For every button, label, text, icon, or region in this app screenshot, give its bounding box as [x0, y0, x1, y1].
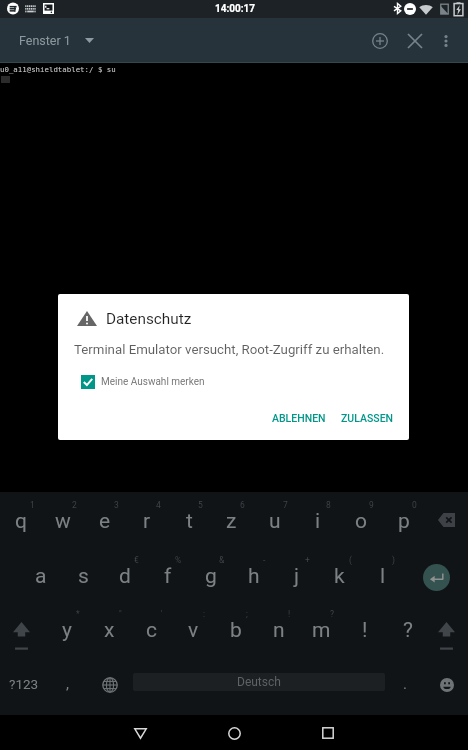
staticText: ?	[330, 609, 335, 619]
button[interactable]: 4	[126, 492, 168, 547]
button[interactable]: Fenster 1	[0, 18, 104, 63]
button[interactable]: Emoji	[425, 655, 468, 715]
button[interactable]: 7	[253, 492, 296, 547]
button[interactable]: Deutsch	[127, 655, 382, 715]
staticText: w	[55, 509, 71, 534]
staticText: g	[205, 564, 217, 589]
button[interactable]: ;	[210, 601, 253, 655]
staticText: s	[78, 564, 89, 589]
button[interactable]: 9	[339, 492, 382, 547]
button[interactable]: :	[168, 601, 210, 655]
button[interactable]: 5	[168, 492, 210, 547]
staticText: r	[143, 509, 151, 534]
button[interactable]: Change language	[84, 655, 127, 715]
staticText: 4	[156, 500, 161, 510]
button[interactable]: €	[104, 547, 146, 601]
button[interactable]: Shift	[425, 601, 468, 655]
staticText: ZULASSEN	[341, 412, 394, 424]
staticText: 1	[30, 500, 35, 510]
button[interactable]: 2	[42, 492, 84, 547]
button[interactable]: Shift	[0, 601, 42, 655]
staticText: "	[119, 609, 122, 619]
staticText: m	[312, 618, 331, 643]
button[interactable]: 8	[296, 492, 339, 547]
button[interactable]: s	[62, 547, 104, 601]
staticText: x	[104, 618, 115, 643]
staticText: d	[119, 564, 131, 589]
staticText: Fenster 1	[19, 33, 71, 48]
staticText: )	[392, 555, 395, 565]
staticText: 14:00:17	[215, 3, 256, 15]
staticText: e	[99, 509, 111, 534]
staticText: ?	[403, 618, 413, 643]
button[interactable]: %	[146, 547, 189, 601]
staticText: p	[398, 509, 410, 534]
staticText: i	[315, 509, 321, 534]
button[interactable]: Back	[93, 716, 187, 750]
staticText: v	[188, 618, 199, 643]
button[interactable]: &	[189, 547, 232, 601]
staticText: 2	[72, 500, 77, 510]
button[interactable]: ?	[296, 601, 339, 655]
button[interactable]: *	[42, 601, 84, 655]
staticText: l	[380, 564, 386, 589]
button[interactable]: ?123	[0, 655, 42, 715]
button[interactable]: 0	[382, 492, 425, 547]
staticText: a	[35, 564, 47, 589]
button[interactable]: 6	[210, 492, 253, 547]
staticText: '	[161, 609, 163, 619]
button[interactable]: )	[361, 547, 404, 601]
button[interactable]: Recent apps	[281, 716, 375, 750]
staticText: %	[175, 555, 182, 565]
button[interactable]: More options	[431, 18, 461, 63]
button[interactable]: 1	[0, 492, 42, 547]
button[interactable]: ,	[42, 655, 84, 715]
staticText: 8	[326, 500, 331, 510]
staticText: Terminal Emulator versucht, Root-Zugriff…	[74, 342, 385, 358]
staticText: 9	[369, 500, 374, 510]
staticText: €	[134, 555, 139, 565]
staticText: u	[269, 509, 281, 534]
staticText: u0_a11@shieldtablet:/ $ su	[0, 65, 116, 74]
staticText: z	[226, 509, 237, 534]
button[interactable]: !	[253, 601, 296, 655]
button[interactable]: ?	[382, 601, 425, 655]
button[interactable]: -	[232, 547, 275, 601]
button[interactable]: "	[84, 601, 126, 655]
button[interactable]: '	[126, 601, 168, 655]
button[interactable]: ABLEHNEN	[265, 402, 333, 434]
staticText: 3	[114, 500, 119, 510]
staticText: :	[203, 609, 206, 619]
staticText: 5	[198, 500, 203, 510]
staticText: !	[362, 618, 368, 643]
staticText: Datenschutz	[106, 310, 192, 328]
staticText: (	[349, 555, 352, 565]
staticText: b	[230, 618, 242, 643]
staticText: q	[15, 509, 27, 534]
button[interactable]: Delete	[425, 492, 468, 547]
staticText: +	[305, 555, 310, 565]
button[interactable]: a	[20, 547, 62, 601]
button[interactable]: Close window	[397, 18, 433, 63]
button[interactable]: !	[339, 601, 382, 655]
button[interactable]: New window	[362, 18, 398, 63]
staticText: n	[273, 618, 285, 643]
staticText: .	[403, 675, 407, 693]
staticText: k	[334, 564, 345, 589]
button[interactable]: +	[275, 547, 318, 601]
staticText: h	[248, 564, 260, 589]
staticText: ,	[66, 675, 69, 693]
button[interactable]: ZULASSEN	[333, 402, 401, 434]
button[interactable]: 3	[84, 492, 126, 547]
button[interactable]: Meine Auswahl merken	[81, 370, 205, 394]
staticText: o	[355, 509, 367, 534]
staticText: Meine Auswahl merken	[101, 376, 205, 388]
staticText: 7	[283, 500, 288, 510]
button[interactable]: Home	[187, 716, 281, 750]
staticText: ?123	[9, 676, 39, 692]
button[interactable]: Enter	[404, 547, 468, 601]
button[interactable]: (	[318, 547, 361, 601]
staticText: !	[288, 609, 291, 619]
staticText: f	[164, 564, 172, 589]
